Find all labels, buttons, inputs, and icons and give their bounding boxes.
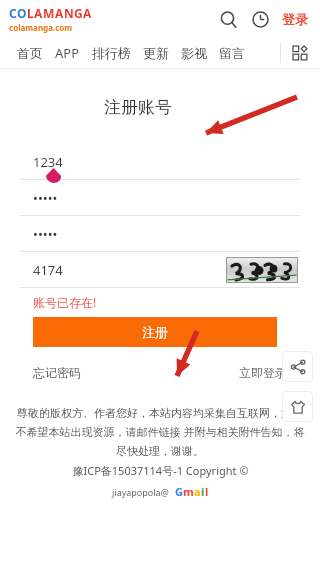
staticText: i: [201, 484, 205, 499]
staticText: G: [74, 5, 83, 21]
staticText: •••••: [33, 225, 58, 243]
staticText: l: [205, 484, 209, 499]
button[interactable]: 留言: [213, 41, 251, 65]
staticText: L: [27, 5, 34, 21]
button[interactable]: History: [247, 6, 273, 32]
staticText: 4174: [33, 261, 63, 279]
staticText: 留言: [219, 45, 245, 61]
staticText: colamanga.com: [9, 22, 73, 33]
staticText: A: [55, 5, 64, 21]
button[interactable]: Search: [215, 6, 241, 32]
staticText: a: [194, 484, 201, 499]
button[interactable]: 注册: [33, 317, 277, 347]
button[interactable]: Share: [282, 351, 313, 382]
staticText: 账号已存在!: [33, 294, 97, 310]
staticText: M: [43, 5, 55, 21]
button[interactable]: 排行榜: [86, 41, 137, 65]
staticText: O: [17, 5, 27, 21]
button[interactable]: 首页: [11, 41, 49, 65]
staticText: jiayapopola@: [112, 486, 169, 498]
staticText: 注册账号: [104, 97, 172, 118]
button[interactable]: 登录: [280, 7, 310, 31]
staticText: A: [83, 5, 92, 21]
staticText: APP: [55, 44, 80, 62]
staticText: 1234: [33, 153, 63, 171]
button[interactable]: Refresh captcha: [226, 257, 298, 283]
staticText: 更新: [143, 45, 169, 61]
staticText: m: [183, 484, 194, 499]
staticText: 注册: [142, 324, 168, 340]
staticText: 影视: [181, 45, 207, 61]
staticText: 排行榜: [92, 45, 131, 61]
staticText: G: [175, 484, 183, 499]
button[interactable]: 忘记密码: [33, 365, 81, 380]
button[interactable]: 立即登录: [239, 365, 287, 380]
button[interactable]: APP: [49, 40, 86, 66]
staticText: A: [34, 5, 43, 21]
staticText: 豫ICP备15037114号-1 Copyright ©: [72, 463, 249, 478]
button[interactable]: Merchandise: [282, 391, 313, 422]
button[interactable]: Categories: [288, 41, 312, 65]
staticText: 登录: [282, 11, 308, 27]
staticText: 首页: [17, 45, 43, 61]
staticText: C: [9, 5, 17, 21]
staticText: 尊敬的版权方、作者您好，本站内容均采集自互联网，如您不希望本站出现资源，请邮件链…: [14, 406, 306, 458]
staticText: •••••: [33, 189, 58, 207]
button[interactable]: 影视: [175, 41, 213, 65]
button[interactable]: 更新: [137, 41, 175, 65]
staticText: N: [64, 5, 74, 21]
